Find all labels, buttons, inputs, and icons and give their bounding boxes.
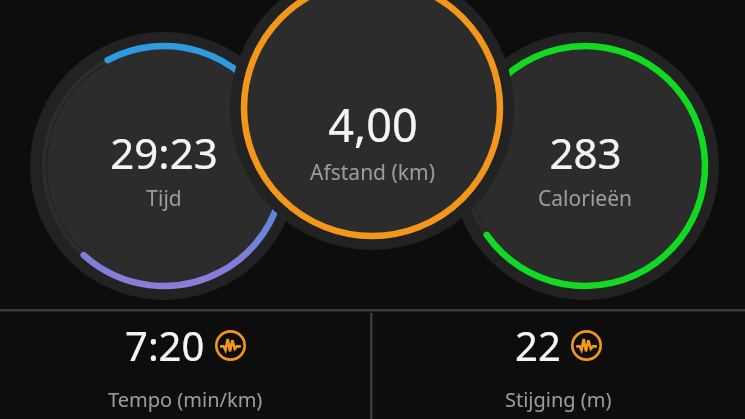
staticText: Tijd bbox=[146, 184, 182, 213]
staticText: 283 bbox=[549, 124, 622, 181]
staticText: 4,00 bbox=[328, 94, 418, 155]
button[interactable]: 7:20 bbox=[0, 312, 371, 419]
staticText: 7:20 bbox=[125, 318, 205, 372]
button[interactable]: 22 bbox=[371, 312, 745, 419]
other: Tijd 29:23 bbox=[0, 0, 745, 419]
staticText: Stijging (m) bbox=[505, 386, 612, 413]
staticText: 29:23 bbox=[110, 124, 218, 181]
other: Calorieën 283 bbox=[0, 0, 745, 419]
other: Afstand 4,00 km bbox=[0, 0, 745, 419]
staticText: 22 bbox=[515, 318, 561, 372]
staticText: Calorieën bbox=[538, 184, 632, 213]
staticText: Afstand (km) bbox=[310, 158, 435, 187]
other: Hartslagzone bbox=[571, 330, 602, 361]
staticText: Tempo (min/km) bbox=[108, 386, 263, 413]
other: Hartslagzone bbox=[215, 330, 246, 361]
